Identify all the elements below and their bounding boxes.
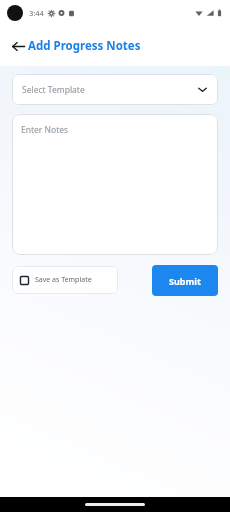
staticText: Add Progress Notes — [28, 38, 141, 54]
staticText: Submit — [169, 275, 201, 287]
staticText: Save as Template — [35, 275, 92, 285]
button[interactable]: Enter Notes — [12, 114, 218, 255]
button[interactable]: Save as Template — [12, 266, 118, 294]
staticText: 3:44 — [29, 8, 44, 18]
staticText: Select Template — [22, 84, 85, 96]
button[interactable]: Back — [7, 35, 29, 57]
button[interactable]: Select Template — [12, 74, 218, 105]
staticText: Enter Notes — [21, 124, 69, 136]
button[interactable]: Submit — [152, 265, 218, 296]
